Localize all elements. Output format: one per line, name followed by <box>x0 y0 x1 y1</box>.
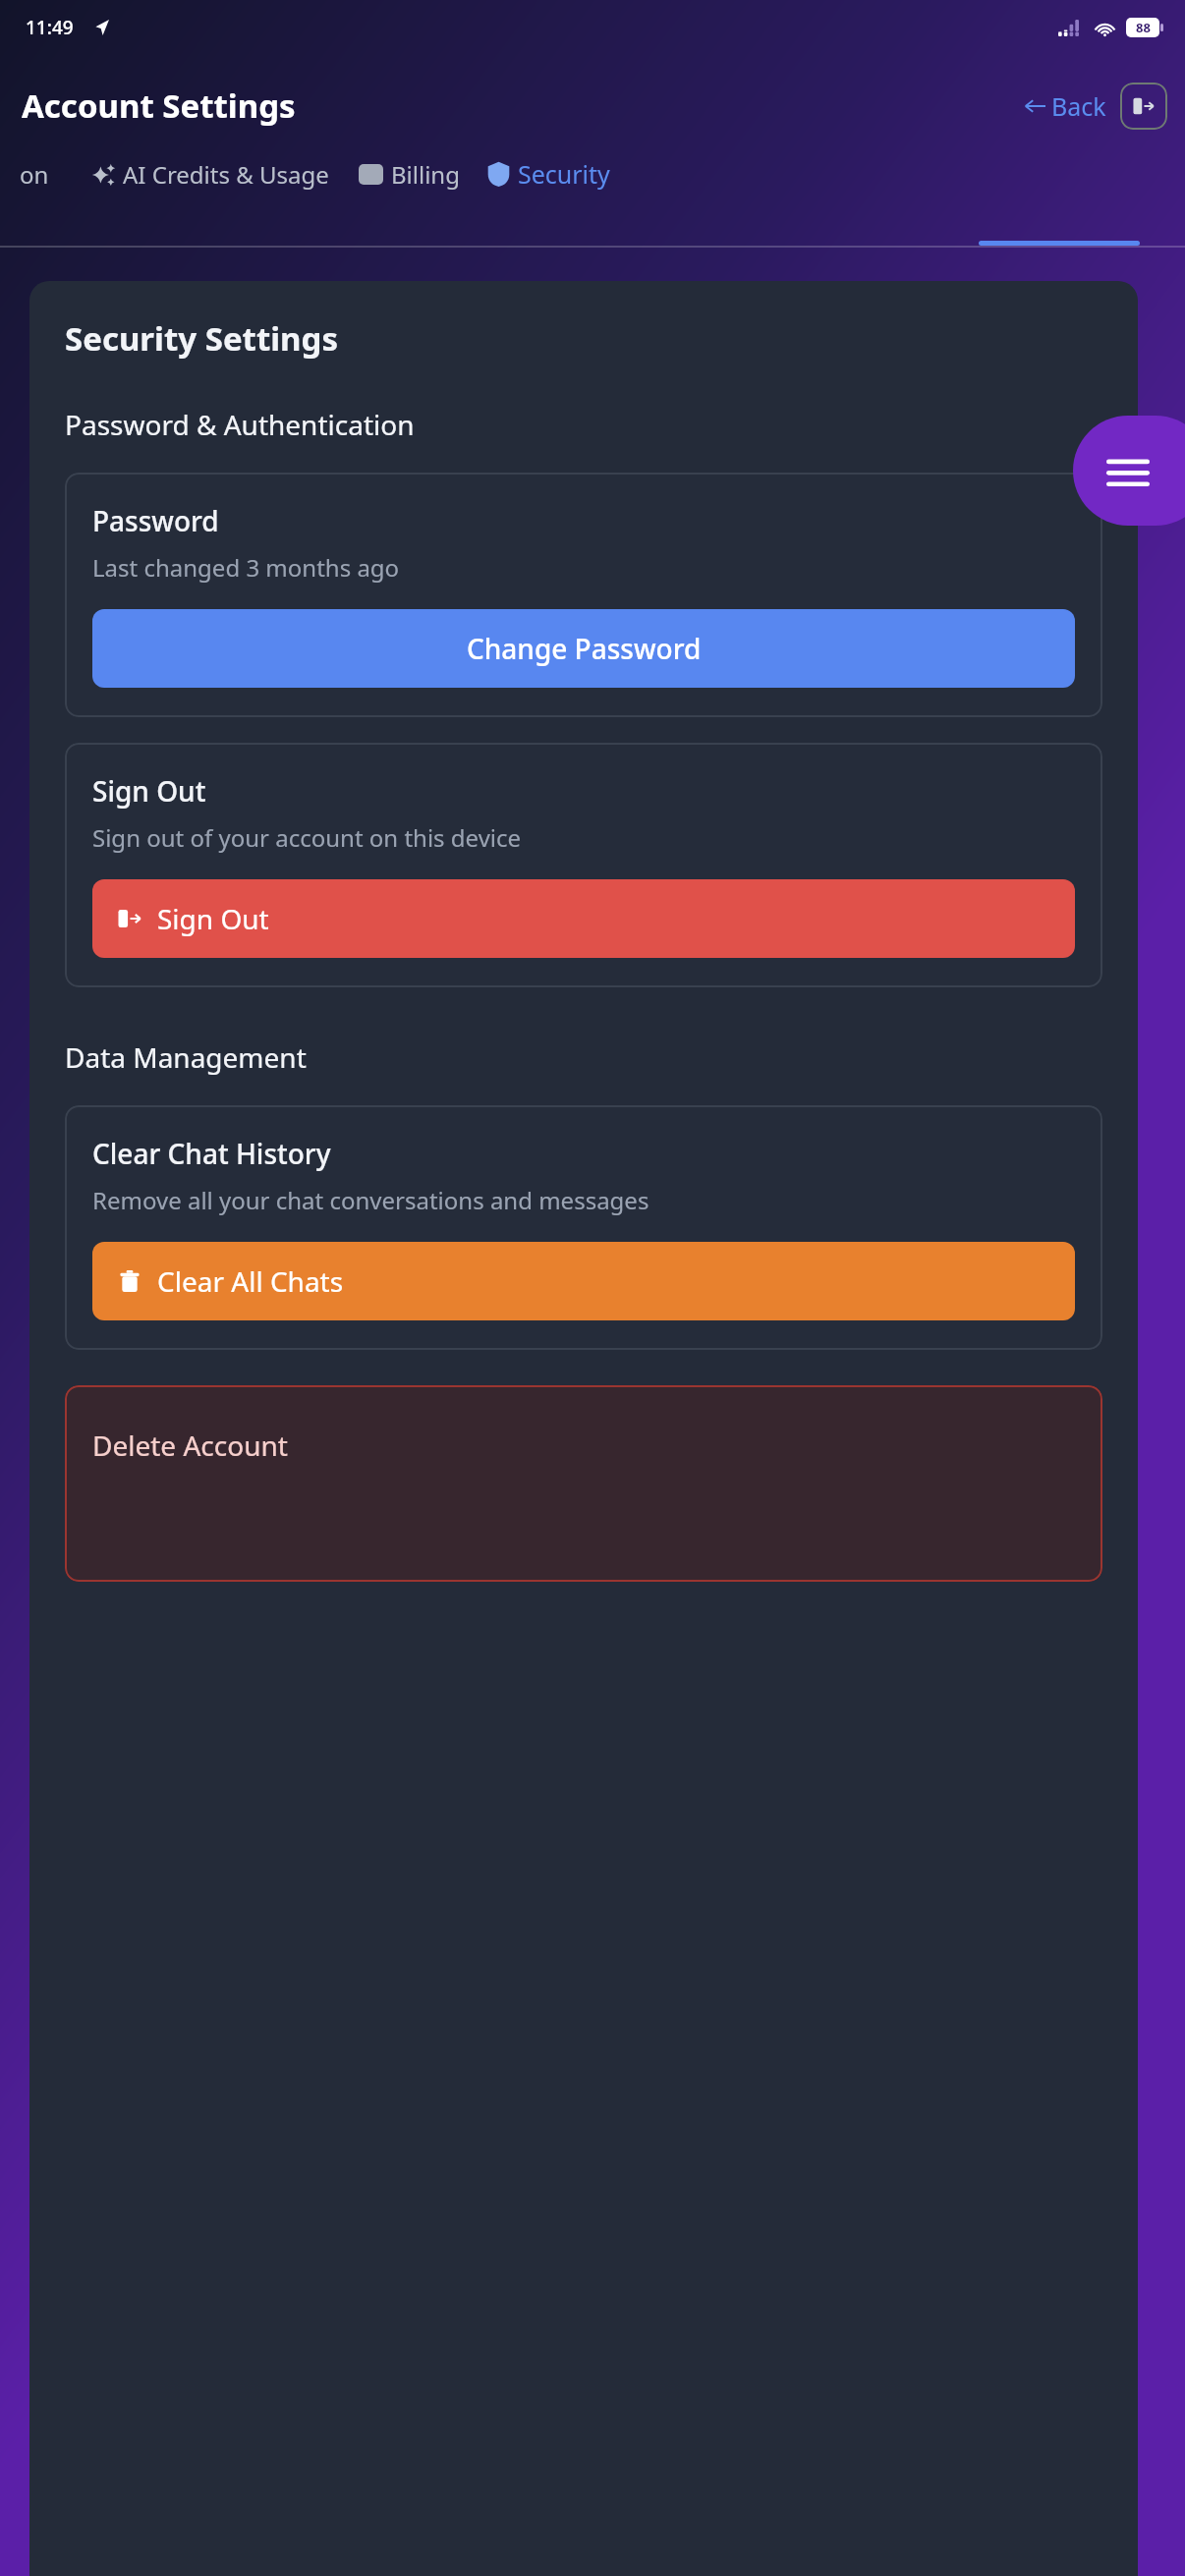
button[interactable]: on <box>20 158 49 191</box>
button[interactable]: Menu <box>1073 416 1185 526</box>
staticText: 11:49 <box>26 15 74 40</box>
staticText: Change Password <box>467 630 702 667</box>
staticText: Password <box>92 502 219 539</box>
button[interactable]: Billing <box>359 158 460 191</box>
staticText: Clear All Chats <box>157 1262 344 1300</box>
button[interactable]: Delete Account <box>65 1385 1102 1582</box>
staticText: Password & Authentication <box>65 406 415 443</box>
staticText: Back <box>1051 89 1106 123</box>
staticText: Sign Out <box>92 772 206 810</box>
staticText: Security Settings <box>65 316 338 361</box>
staticText: Sign Out <box>157 900 269 937</box>
staticText: Account Settings <box>22 84 296 128</box>
button[interactable]: Clear All Chats <box>92 1242 1075 1320</box>
button[interactable]: Sign Out <box>92 879 1075 958</box>
staticText: Data Management <box>65 1038 307 1076</box>
button[interactable]: Back <box>1020 85 1110 127</box>
button[interactable]: Sign out <box>1120 83 1167 130</box>
staticText: Clear Chat History <box>92 1135 331 1172</box>
staticText: 88 <box>1136 19 1151 36</box>
staticText: Delete Account <box>92 1427 288 1464</box>
button[interactable]: Change Password <box>92 609 1075 688</box>
staticText: Remove all your chat conversations and m… <box>92 1184 649 1216</box>
button[interactable]: AI Credits & Usage <box>90 158 329 191</box>
staticText: Security <box>518 157 610 191</box>
staticText: Last changed 3 months ago <box>92 551 400 584</box>
staticText: Billing <box>391 158 460 191</box>
button[interactable]: Security <box>487 157 610 191</box>
staticText: AI Credits & Usage <box>123 158 329 191</box>
staticText: Sign out of your account on this device <box>92 821 522 854</box>
